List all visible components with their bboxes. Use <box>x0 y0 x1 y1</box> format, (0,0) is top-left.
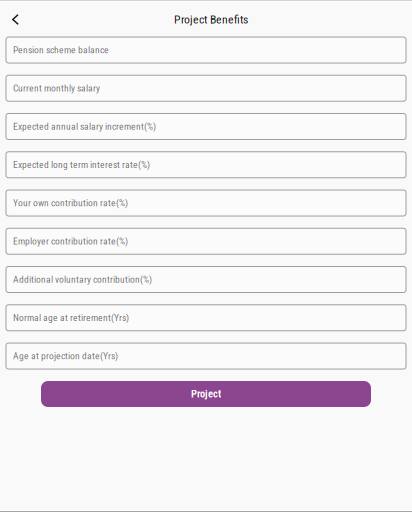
button[interactable]: Back <box>0 5 31 34</box>
staticText: Current monthly salary <box>13 83 100 94</box>
button[interactable]: Employer contribution rate(%) <box>6 228 406 254</box>
staticText: Employer contribution rate(%) <box>13 236 128 247</box>
button[interactable]: Expected annual salary increment(%) <box>6 113 406 139</box>
staticText: Expected annual salary increment(%) <box>13 121 156 132</box>
button[interactable]: Age at projection date(Yrs) <box>6 343 406 369</box>
staticText: Additional voluntary contribution(%) <box>13 274 152 285</box>
button[interactable]: Current monthly salary <box>6 75 406 101</box>
button[interactable]: Project <box>41 381 371 407</box>
button[interactable]: Normal age at retirement(Yrs) <box>6 305 406 331</box>
staticText: Your own contribution rate(%) <box>13 197 128 209</box>
staticText: Age at projection date(Yrs) <box>13 350 118 362</box>
button[interactable]: Pension scheme balance <box>6 37 406 63</box>
staticText: Project <box>191 388 221 400</box>
staticText: Normal age at retirement(Yrs) <box>13 312 129 323</box>
staticText: Pension scheme balance <box>13 44 109 56</box>
button[interactable]: Your own contribution rate(%) <box>6 190 406 216</box>
staticText: Expected long term interest rate(%) <box>13 159 150 170</box>
button[interactable]: Additional voluntary contribution(%) <box>6 266 406 292</box>
staticText: Project Benefits <box>174 13 248 26</box>
button[interactable]: Expected long term interest rate(%) <box>6 152 406 178</box>
